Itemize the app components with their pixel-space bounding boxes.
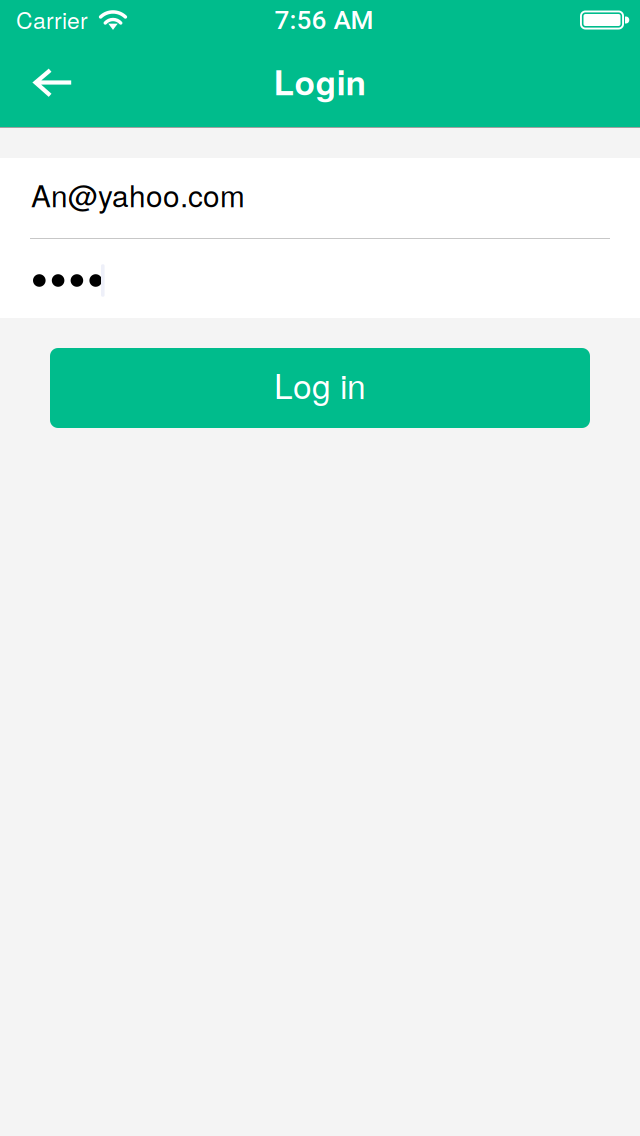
- staticText: An@yahoo.com: [31, 173, 245, 216]
- staticText: Carrier: [16, 3, 88, 35]
- button[interactable]: Back: [0, 40, 73, 126]
- staticText: 7:56 AM: [274, 5, 373, 35]
- staticText: Login: [273, 57, 366, 105]
- button[interactable]: Log in: [50, 348, 590, 428]
- staticText: Log in: [274, 360, 366, 408]
